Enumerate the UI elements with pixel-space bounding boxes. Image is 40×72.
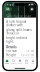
staticText: Search [10, 63, 16, 64]
staticText: Pot size [6, 49, 17, 53]
button[interactable]: Care [17, 58, 23, 66]
staticText: Monstera Deliciosa [6, 4, 25, 14]
staticText: Care [18, 63, 22, 64]
staticText: You [31, 63, 34, 64]
staticText: 60–70 cm [21, 53, 34, 57]
staticText: Water weekly [17, 58, 34, 61]
button[interactable]: Back [6, 7, 10, 11]
staticText: glossy, split leaves. Thrives in [6, 28, 32, 35]
staticText: Care [6, 58, 12, 61]
staticText: Height [6, 53, 16, 57]
staticText: Add to bag [21, 63, 31, 70]
staticText: $48 [28, 4, 34, 9]
staticText: Details [6, 45, 16, 49]
button[interactable]: Shop [4, 58, 10, 66]
staticText: Shop [5, 63, 9, 64]
button[interactable]: Height [4, 53, 36, 57]
button[interactable]: You [30, 58, 36, 66]
button[interactable]: Add to favourites [30, 7, 34, 11]
staticText: 9:41 [7, 3, 14, 6]
button[interactable]: Care [4, 57, 36, 62]
staticText: $48.00 [6, 68, 17, 71]
button[interactable]: Add to bag [19, 62, 34, 71]
staticText: Bag [25, 63, 28, 64]
button[interactable]: Search [10, 58, 17, 66]
button[interactable]: Bag [23, 58, 30, 66]
button[interactable]: Pot size [4, 49, 36, 53]
staticText: 14 cm [26, 49, 34, 53]
staticText: bright indirect light. [6, 36, 27, 43]
staticText: Swiss cheese plant [6, 15, 31, 18]
staticText: A lush tropical climber with [6, 20, 26, 27]
